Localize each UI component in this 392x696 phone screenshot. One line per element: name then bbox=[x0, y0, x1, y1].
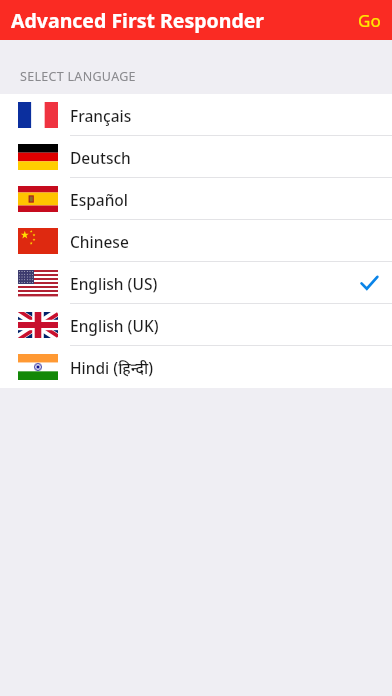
button[interactable]: Español bbox=[0, 178, 392, 220]
staticText: Español bbox=[70, 189, 129, 210]
button[interactable]: Hindi (हिन्दी) bbox=[0, 346, 392, 388]
staticText: English (US) bbox=[70, 273, 158, 294]
other: Selected bbox=[358, 272, 380, 294]
staticText: Deutsch bbox=[70, 147, 131, 168]
button[interactable]: Chinese bbox=[0, 220, 392, 262]
staticText: Hindi (हिन्दी) bbox=[70, 357, 153, 378]
button[interactable]: English (US) bbox=[0, 262, 392, 304]
button[interactable]: English (UK) bbox=[0, 304, 392, 346]
button[interactable]: Français bbox=[0, 94, 392, 136]
staticText: Français bbox=[70, 105, 132, 126]
staticText: Go bbox=[358, 9, 381, 32]
staticText: SELECT LANGUAGE bbox=[20, 68, 136, 85]
button[interactable]: Go bbox=[347, 0, 392, 40]
button[interactable]: Deutsch bbox=[0, 136, 392, 178]
staticText: English (UK) bbox=[70, 315, 159, 336]
staticText: Chinese bbox=[70, 231, 129, 252]
staticText: Advanced First Responder bbox=[11, 7, 265, 34]
